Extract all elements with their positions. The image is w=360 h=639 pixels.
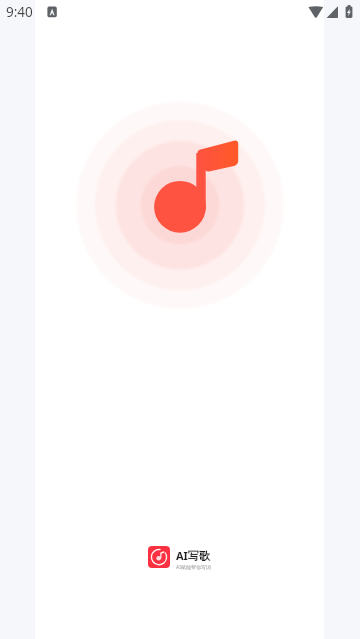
staticText: 9:40 — [6, 3, 33, 21]
staticText: AI写歌 — [176, 548, 210, 563]
staticText: AI赋能帮你写词 — [176, 564, 211, 571]
